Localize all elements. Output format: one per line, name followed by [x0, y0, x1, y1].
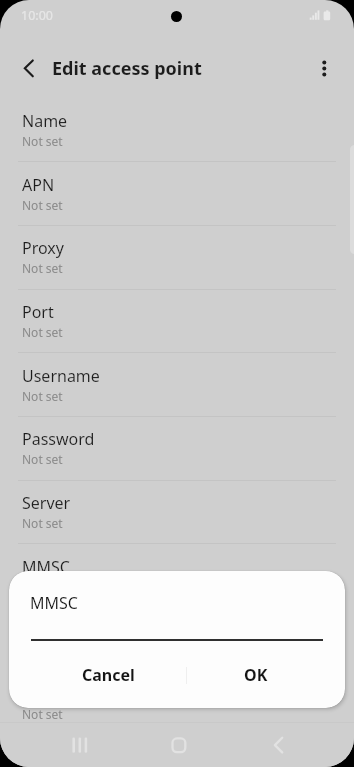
button[interactable]: Cancel	[36, 659, 181, 691]
staticText: Edit access point	[52, 56, 202, 81]
button[interactable]: MMS proxy	[0, 609, 354, 673]
button[interactable]: Proxy	[0, 227, 354, 291]
button[interactable]: Home	[156, 722, 200, 767]
staticText: MMSC	[22, 556, 70, 578]
button[interactable]: More options	[306, 50, 343, 87]
button[interactable]: MMSC	[0, 546, 354, 610]
button[interactable]: APN	[0, 164, 354, 228]
button[interactable]: Server	[0, 482, 354, 546]
staticText: Not set	[22, 388, 63, 404]
staticText: 10:00	[21, 7, 53, 24]
button[interactable]: Username	[0, 355, 354, 419]
staticText: Server	[22, 492, 71, 514]
staticText: Not set	[22, 260, 63, 276]
button[interactable]: Port	[0, 291, 354, 355]
button[interactable]: Name	[0, 100, 354, 164]
staticText: Not set	[22, 197, 63, 213]
staticText: Not set	[22, 133, 63, 149]
staticText: Not set	[22, 706, 63, 722]
button[interactable]: OK	[183, 659, 328, 691]
button[interactable]: Recents	[58, 722, 102, 767]
button[interactable]: Navigate up	[10, 50, 47, 87]
staticText: Name	[22, 110, 68, 132]
staticText: Username	[22, 365, 100, 387]
staticText: Proxy	[22, 237, 64, 259]
button[interactable]: MMS port	[0, 673, 354, 722]
button[interactable]: Password	[0, 418, 354, 482]
staticText: Password	[22, 428, 95, 450]
staticText: Not set	[22, 324, 63, 340]
staticText: APN	[22, 174, 55, 196]
staticText: Not set	[22, 515, 63, 531]
staticText: OK	[244, 664, 268, 686]
staticText: Not set	[22, 451, 63, 467]
staticText: Cancel	[82, 664, 135, 686]
staticText: MMS proxy	[22, 619, 107, 641]
staticText: MMSC	[30, 592, 78, 614]
staticText: Port	[22, 301, 54, 323]
